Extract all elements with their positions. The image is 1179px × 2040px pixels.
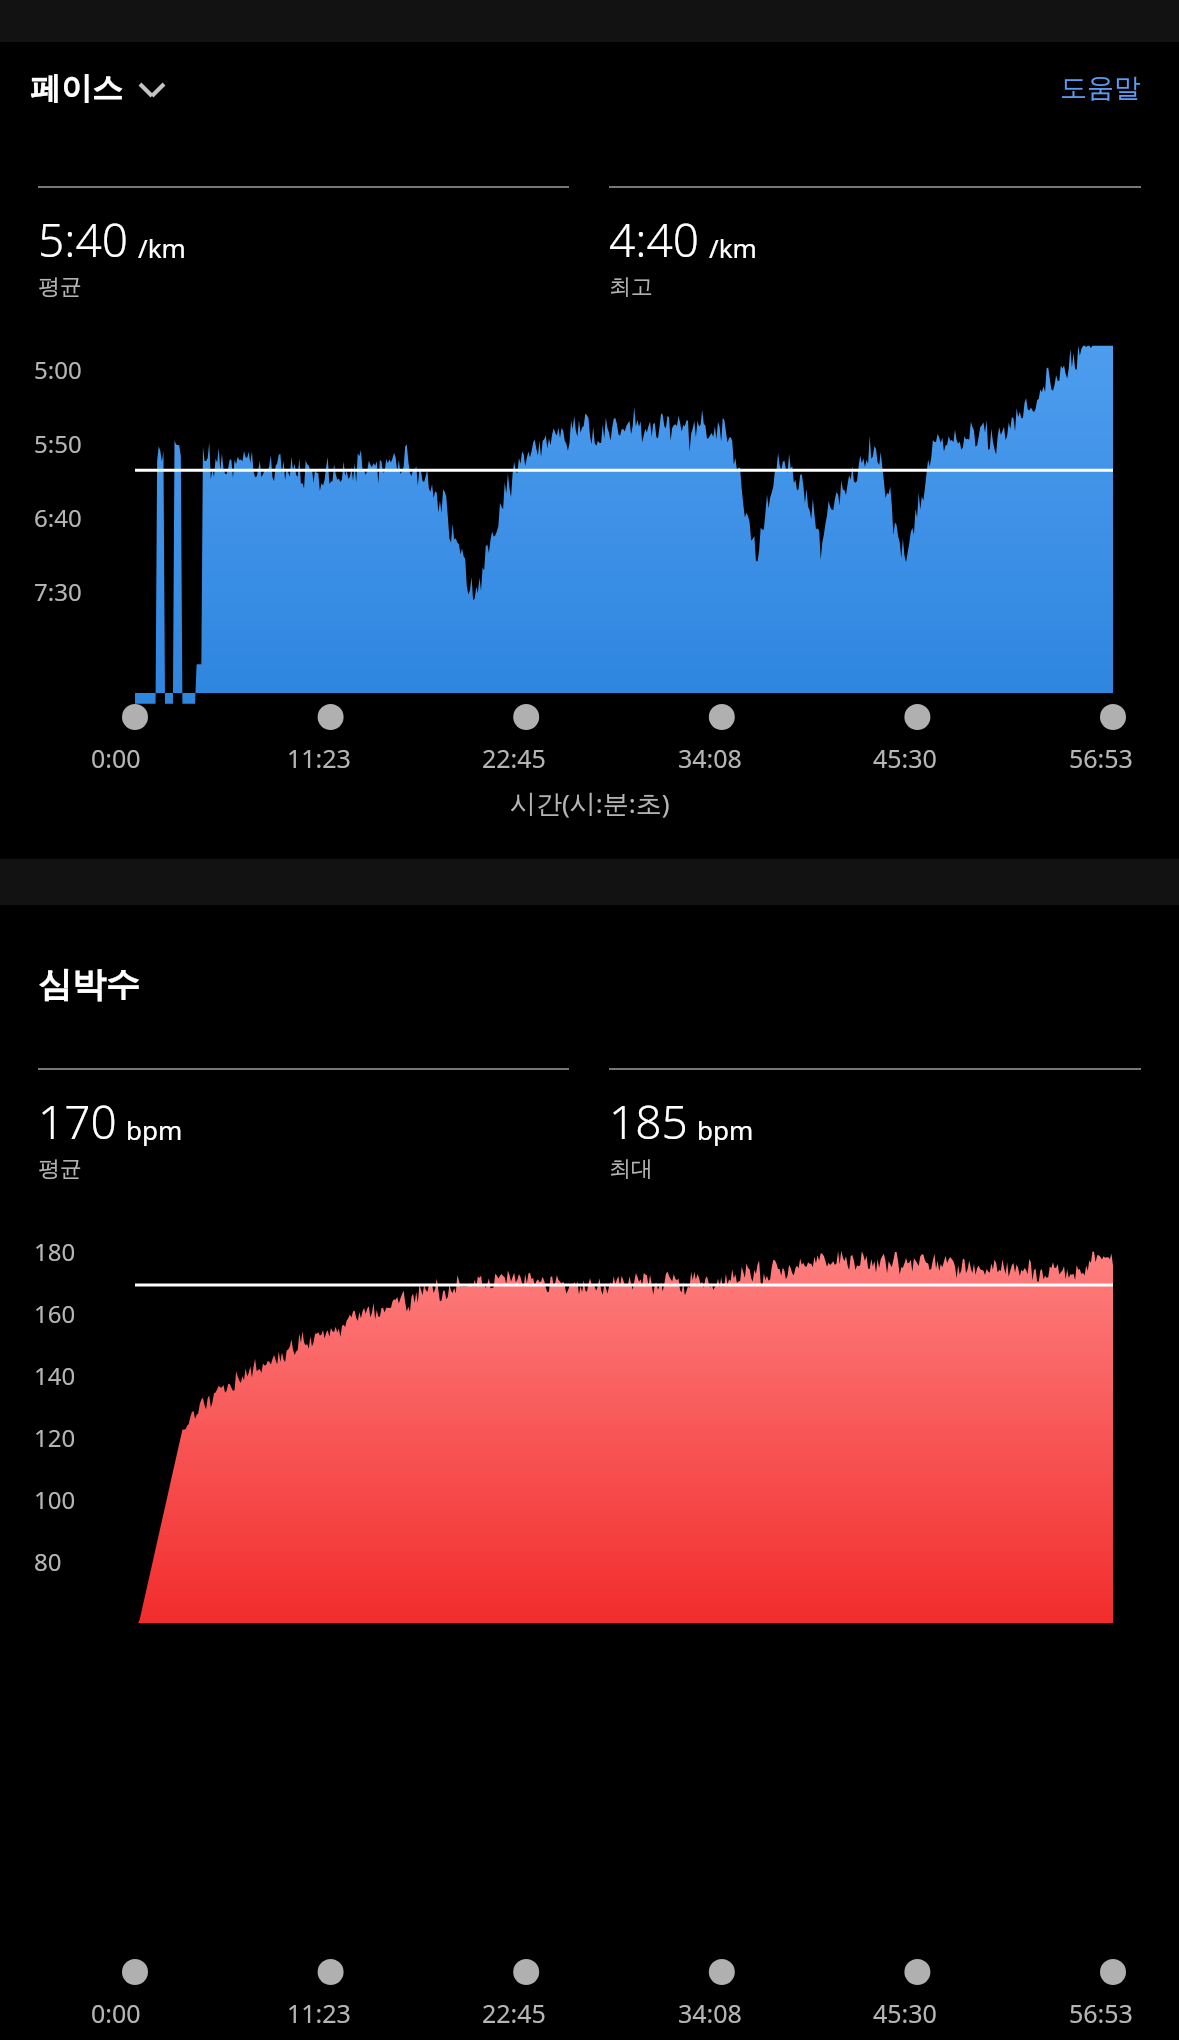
- staticText: /km: [138, 230, 186, 265]
- button[interactable]: 5:40: [38, 186, 569, 301]
- staticText: 11:23: [287, 1996, 351, 2030]
- staticText: 4:40: [609, 208, 700, 271]
- staticText: 최고: [609, 273, 653, 301]
- staticText: /km: [709, 230, 757, 265]
- staticText: 45:30: [873, 741, 937, 775]
- staticText: 0:00: [91, 1996, 141, 2030]
- staticText: 56:53: [1069, 741, 1133, 775]
- staticText: 34:08: [678, 1996, 742, 2030]
- staticText: bpm: [697, 1112, 754, 1147]
- staticText: 100: [34, 1483, 76, 1516]
- staticText: 45:30: [873, 1996, 937, 2030]
- staticText: 11:23: [287, 741, 351, 775]
- other: Change metric: [137, 74, 167, 104]
- staticText: 180: [34, 1235, 76, 1268]
- staticText: 185: [609, 1090, 688, 1153]
- staticText: 160: [34, 1297, 76, 1330]
- staticText: 5:40: [38, 208, 129, 271]
- button[interactable]: 페이스: [30, 69, 177, 108]
- staticText: 0:00: [91, 741, 141, 775]
- staticText: 80: [34, 1545, 62, 1578]
- staticText: 도움말: [1060, 71, 1141, 105]
- staticText: 140: [34, 1359, 76, 1392]
- staticText: 최대: [609, 1155, 653, 1183]
- staticText: 56:53: [1069, 1996, 1133, 2030]
- staticText: 7:30: [34, 575, 82, 608]
- staticText: 페이스: [30, 69, 123, 108]
- staticText: 120: [34, 1421, 76, 1454]
- staticText: 22:45: [482, 1996, 546, 2030]
- staticText: 170: [38, 1090, 117, 1153]
- staticText: 시간(시:분:초): [510, 785, 670, 821]
- button[interactable]: 도움말: [1052, 63, 1149, 113]
- staticText: 5:00: [34, 353, 82, 386]
- staticText: 22:45: [482, 741, 546, 775]
- staticText: 6:40: [34, 501, 82, 534]
- staticText: bpm: [126, 1112, 183, 1147]
- staticText: 34:08: [678, 741, 742, 775]
- staticText: 심박수: [38, 963, 140, 1006]
- button[interactable]: 4:40: [609, 186, 1141, 301]
- staticText: 평균: [38, 1155, 82, 1183]
- button[interactable]: 185: [609, 1068, 1141, 1183]
- staticText: 5:50: [34, 427, 82, 460]
- button[interactable]: 170: [38, 1068, 569, 1183]
- staticText: 평균: [38, 273, 82, 301]
